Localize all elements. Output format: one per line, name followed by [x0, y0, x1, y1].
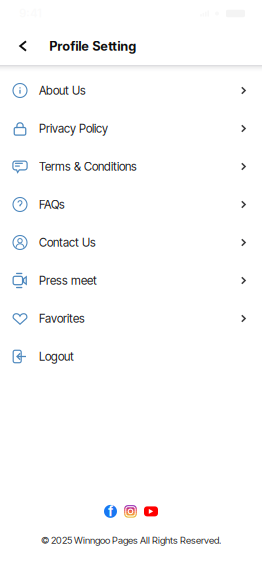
button[interactable]: FAQs [0, 185, 262, 223]
staticText: © 2025 Winngoo Pages All Rights Reserved… [41, 534, 221, 546]
button[interactable]: Terms & Conditions [0, 147, 262, 185]
button[interactable]: Back [0, 27, 49, 65]
staticText: Profile Setting [49, 38, 136, 54]
button[interactable]: Press meet [0, 261, 262, 299]
button[interactable]: Facebook [103, 504, 117, 518]
staticText: f [108, 503, 113, 519]
button[interactable]: About Us [0, 71, 262, 109]
staticText: Terms & Conditions [39, 159, 137, 174]
button[interactable]: Logout [0, 337, 262, 375]
staticText: Press meet [39, 273, 97, 288]
staticText: Privacy Policy [39, 121, 108, 136]
button[interactable]: YouTube [143, 504, 158, 518]
staticText: Logout [39, 349, 74, 364]
button[interactable]: Favorites [0, 299, 262, 337]
button[interactable]: Instagram [123, 504, 137, 518]
button[interactable]: Contact Us [0, 223, 262, 261]
staticText: Contact Us [39, 235, 96, 250]
button[interactable]: Privacy Policy [0, 109, 262, 147]
staticText: About Us [39, 83, 86, 98]
staticText: FAQs [39, 197, 65, 212]
staticText: Favorites [39, 311, 85, 326]
